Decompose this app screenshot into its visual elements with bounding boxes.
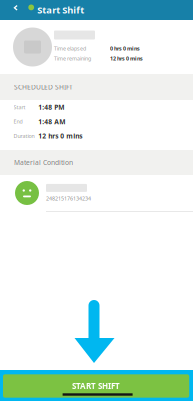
staticText: Time remaining bbox=[54, 55, 91, 62]
staticText: 0 hrs 0 mins bbox=[110, 45, 140, 52]
button[interactable]: START SHIFT bbox=[3, 374, 189, 398]
staticText: SCHEDULED SHIFT bbox=[14, 83, 73, 91]
staticText: 248215176134234 bbox=[46, 195, 91, 202]
staticText: Material Condition bbox=[14, 158, 73, 167]
staticText: Start bbox=[14, 104, 26, 111]
staticText: 12 hrs 0 mins bbox=[38, 131, 82, 140]
staticText: Time elapsed bbox=[54, 45, 86, 52]
staticText: 1:48 AM bbox=[38, 117, 65, 126]
staticText: End bbox=[14, 118, 23, 125]
staticText: Duration bbox=[14, 132, 35, 139]
button[interactable]: Back bbox=[0, 0, 28, 20]
staticText: Start Shift bbox=[37, 4, 84, 16]
staticText: START SHIFT bbox=[72, 381, 120, 391]
staticText: 1:48 PM bbox=[38, 103, 64, 112]
staticText: 12 hrs 0 mins bbox=[110, 55, 143, 62]
